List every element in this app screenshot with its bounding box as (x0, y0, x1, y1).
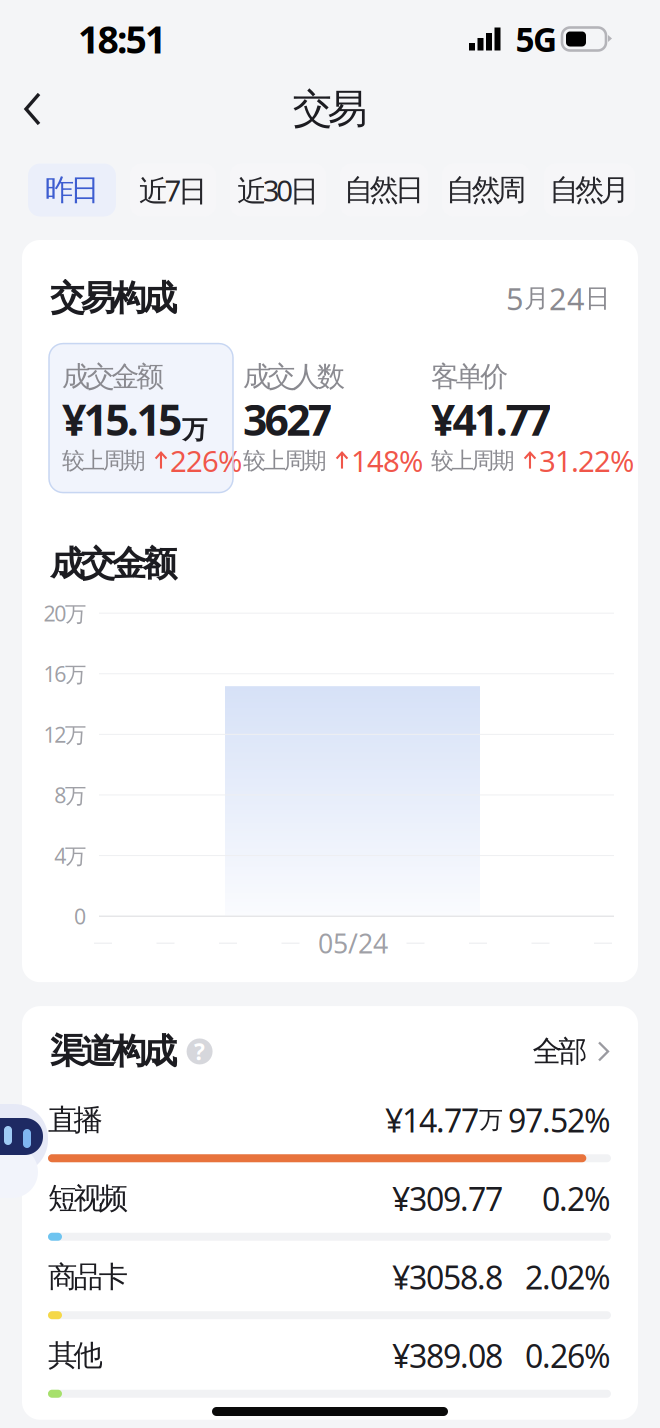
staticText: 成交金额 (50, 543, 178, 585)
button[interactable]: Back (0, 77, 68, 141)
staticText: 8万 (54, 781, 86, 809)
staticText: ¥389.08 (392, 1334, 503, 1377)
button[interactable]: Help (178, 1031, 222, 1071)
staticText: ¥14.77 (385, 1099, 479, 1141)
staticText: 31.22% (539, 441, 634, 480)
staticText: 226% (170, 441, 242, 480)
staticText: 较上周期 (243, 447, 327, 474)
button[interactable]: 自然日 (340, 163, 428, 216)
staticText: 5 (506, 278, 524, 319)
staticText: 5G (515, 17, 557, 61)
staticText: 自然日 (344, 172, 424, 208)
staticText: 0 (74, 902, 86, 930)
staticText: 交易构成 (50, 277, 178, 320)
staticText: 短视频 (48, 1180, 128, 1216)
staticText: 20万 (43, 599, 86, 627)
staticText: 12万 (43, 720, 86, 748)
staticText: 0.26% (525, 1334, 611, 1377)
staticText: 商品卡 (48, 1259, 128, 1295)
staticText: 直播 (48, 1102, 102, 1138)
staticText: ¥15.15 (62, 391, 182, 447)
staticText: ¥41.77 (431, 391, 551, 447)
staticText: 近7日 (139, 170, 207, 209)
staticText: 成交金额 (62, 359, 164, 394)
staticText: 交易 (292, 84, 368, 133)
button[interactable]: 近7日 (130, 163, 216, 216)
staticText: 万 (479, 1105, 503, 1135)
staticText: 自然月 (549, 172, 630, 208)
staticText: 渠道构成 (50, 1030, 178, 1073)
staticText: 18:51 (78, 14, 166, 64)
staticText: 全部 (532, 1033, 587, 1069)
button[interactable]: 全部 (532, 1033, 610, 1069)
staticText: ¥3058.8 (392, 1256, 503, 1298)
staticText: 97.52% (508, 1099, 611, 1141)
staticText: 万 (182, 414, 207, 445)
staticText: ¥309.77 (392, 1177, 503, 1220)
staticText: 3627 (243, 391, 332, 447)
staticText: 2.02% (525, 1256, 611, 1298)
button[interactable]: 昨日 (28, 163, 116, 216)
staticText: ? (194, 1036, 205, 1066)
staticText: 客单价 (431, 359, 508, 394)
staticText: 昨日 (45, 172, 99, 208)
staticText: 近30日 (237, 170, 319, 209)
staticText: 较上周期 (62, 447, 146, 474)
staticText: 4万 (54, 841, 86, 870)
staticText: 24 (549, 278, 585, 319)
staticText: 05/24 (318, 925, 388, 961)
staticText: 0.2% (542, 1177, 611, 1220)
staticText: 148% (351, 441, 423, 480)
staticText: 日 (585, 283, 610, 314)
button[interactable]: 近30日 (230, 163, 326, 216)
staticText: 自然周 (446, 172, 526, 208)
button[interactable]: AI assistant (0, 1104, 48, 1198)
staticText: 月 (524, 283, 549, 314)
button[interactable]: 自然月 (544, 163, 635, 216)
staticText: 较上周期 (431, 447, 515, 474)
staticText: 成交人数 (243, 359, 345, 394)
staticText: 16万 (43, 660, 86, 688)
staticText: 其他 (48, 1337, 102, 1373)
button[interactable]: 自然周 (442, 163, 530, 216)
